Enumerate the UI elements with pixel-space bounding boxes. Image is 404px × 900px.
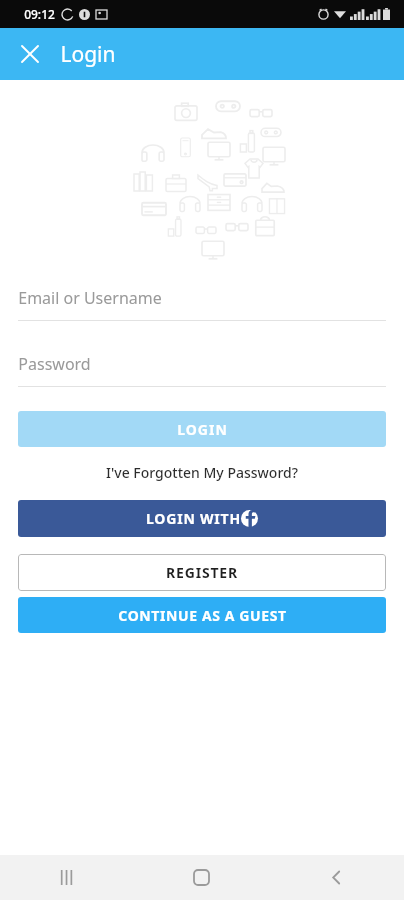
button[interactable]: CONTINUE AS A GUEST: [18, 597, 386, 633]
button[interactable]: Password: [18, 353, 386, 387]
staticText: I've Forgotten My Password?: [106, 463, 298, 482]
button[interactable]: LOGIN: [18, 411, 386, 447]
button[interactable]: I've Forgotten My Password?: [0, 459, 404, 486]
staticText: REGISTER: [166, 563, 238, 582]
button[interactable]: Email or Username: [18, 287, 386, 321]
staticText: CONTINUE AS A GUEST: [118, 606, 287, 625]
button[interactable]: REGISTER: [18, 554, 386, 591]
staticText: Login: [60, 40, 116, 69]
button[interactable]: LOGIN WITH: [18, 500, 386, 537]
staticText: LOGIN: [177, 420, 228, 439]
button[interactable]: Home: [134, 855, 269, 900]
button[interactable]: Close: [8, 32, 52, 76]
button[interactable]: Recent apps: [0, 855, 134, 900]
button[interactable]: Back: [269, 855, 404, 900]
staticText: LOGIN WITH: [146, 509, 241, 528]
staticText: Email or Username: [18, 287, 162, 309]
staticText: Password: [18, 353, 91, 375]
staticText: 09:12: [24, 6, 55, 22]
